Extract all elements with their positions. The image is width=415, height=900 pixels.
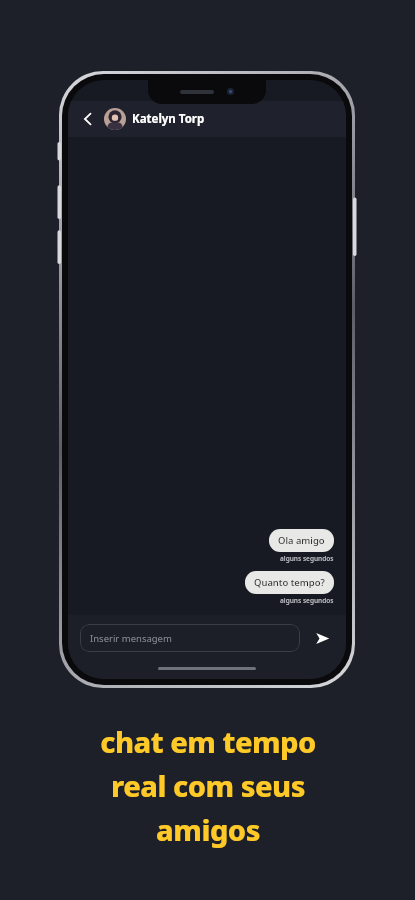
button[interactable]: Back [76, 107, 100, 131]
staticText: amigos [156, 810, 260, 849]
button[interactable]: Quanto tempo? [245, 571, 334, 594]
staticText: chat em tempo [100, 722, 316, 761]
staticText: real com seus [111, 766, 305, 805]
staticText: Quanto tempo? [254, 576, 325, 589]
staticText: Katelyn Torp [132, 111, 205, 127]
button[interactable]: Send [310, 626, 334, 650]
staticText: Inserir mensagem [90, 632, 172, 645]
button[interactable]: Ola amigo [269, 529, 334, 552]
button[interactable]: Inserir mensagem [80, 624, 300, 652]
staticText: Ola amigo [278, 534, 325, 547]
staticText: alguns segundos [280, 554, 334, 563]
staticText: alguns segundos [280, 596, 334, 605]
